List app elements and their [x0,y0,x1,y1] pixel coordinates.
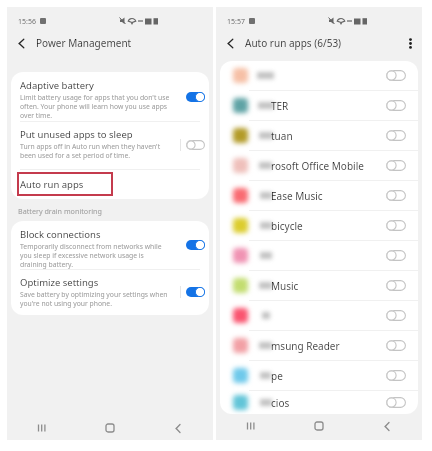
button[interactable]: Turn on [220,301,418,330]
button[interactable]: Turn off [186,92,205,102]
staticText: Adaptive battery [20,79,94,92]
staticText: Auto run apps [20,178,84,191]
staticText: Put unused apps to sleep [20,128,133,141]
button[interactable]: TER [220,91,418,120]
button[interactable]: Turn off [186,240,205,250]
staticText: Turn apps off in Auto run when they have… [20,142,170,160]
staticText: cios [271,396,290,410]
button[interactable]: Block connections [11,221,209,269]
button[interactable]: Back [144,415,213,441]
button[interactable]: Back [353,412,422,440]
staticText: Music [271,279,299,293]
staticText: 15:56 [18,17,36,27]
button[interactable]: Turn on [386,397,406,408]
staticText: Block connections [20,228,101,241]
button[interactable]: Optimize settings [11,269,209,315]
button[interactable]: Turn on [220,61,418,90]
button[interactable]: bicycle [220,211,418,240]
button[interactable]: More options [398,31,422,55]
staticText: Save battery by optimizing your settings… [20,290,170,308]
staticText: tuan [271,129,293,143]
staticText: Power Management [36,36,132,50]
staticText: Limit battery usage for apps that you do… [20,93,170,120]
button[interactable]: Turn on [386,70,406,81]
button[interactable]: Ease Music [220,181,418,210]
staticText: Battery drain monitoring [18,206,102,216]
button[interactable]: Turn on [386,220,406,231]
button[interactable]: rosoft Office Mobile [220,151,418,180]
button[interactable]: cios [220,391,418,414]
button[interactable]: Turn on [220,241,418,270]
button[interactable]: Adaptive battery [11,72,209,121]
button[interactable]: Turn on [386,370,406,381]
button[interactable]: Turn on [186,140,205,150]
staticText: Auto run apps (6/53) [245,36,342,50]
staticText: 15:57 [227,17,245,27]
button[interactable]: Navigate up [7,31,36,55]
button[interactable]: Auto run apps [11,169,209,199]
button[interactable]: Home [284,412,353,440]
button[interactable]: Turn on [386,190,406,201]
staticText: msung Reader [271,339,340,353]
staticText: Ease Music [271,189,323,203]
button[interactable]: Put unused apps to sleep [11,121,209,169]
staticText: TER [271,99,289,113]
button[interactable]: Turn off [186,287,205,297]
staticText: Optimize settings [20,276,99,289]
button[interactable]: Turn on [386,100,406,111]
staticText: Temporarily disconnect from networks whi… [20,242,170,269]
staticText: bicycle [271,219,303,233]
button[interactable]: pe [220,361,418,390]
button[interactable]: Recent apps [7,415,75,441]
button[interactable]: Turn on [386,160,406,171]
button[interactable]: Turn on [386,310,406,321]
button[interactable]: Turn on [386,130,406,141]
button[interactable]: Turn on [386,340,406,351]
button[interactable]: Turn on [386,280,406,291]
staticText: rosoft Office Mobile [271,159,364,173]
button[interactable]: tuan [220,121,418,150]
button[interactable]: Music [220,271,418,300]
button[interactable]: Home [75,415,144,441]
button[interactable]: Recent apps [216,412,284,440]
button[interactable]: Turn on [386,250,406,261]
button[interactable]: Navigate up [216,31,245,55]
button[interactable]: msung Reader [220,331,418,360]
staticText: pe [271,369,283,383]
